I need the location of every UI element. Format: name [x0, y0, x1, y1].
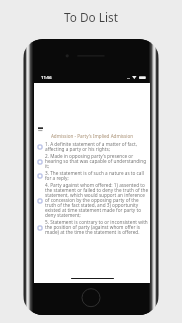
staticText: 1. A definite statement of a matter of f…: [45, 141, 150, 153]
staticText: 2. Made in opposing party's presence or …: [45, 153, 150, 170]
staticText: 3. The statement is of such a nature as …: [45, 170, 150, 182]
staticText: 4. Party against whom offered: 1) assent…: [45, 182, 150, 219]
button[interactable]: 5. Statement is contrary to or inconsist…: [34, 219, 150, 236]
button[interactable]: 2. Made in opposing party's presence or …: [34, 153, 150, 170]
staticText: To Do List: [64, 9, 118, 25]
button[interactable]: Menu: [36, 124, 45, 132]
button[interactable]: 3. The statement is of such a nature as …: [34, 170, 150, 182]
staticText: Admission - Party's Implied Admission: [34, 133, 150, 139]
staticText: 5. Statement is contrary to or inconsist…: [45, 219, 150, 236]
button[interactable]: 4. Party against whom offered: 1) assent…: [34, 182, 150, 219]
button[interactable]: 1. A definite statement of a matter of f…: [34, 141, 150, 153]
staticText: 11:56: [41, 75, 52, 81]
